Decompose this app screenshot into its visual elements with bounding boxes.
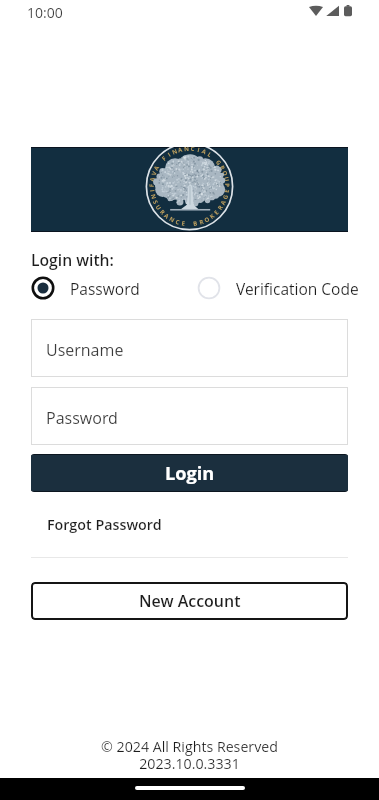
staticText: New Account (139, 590, 241, 612)
staticText: Password (46, 407, 118, 429)
button[interactable]: New Account (31, 582, 348, 620)
staticText: 10:00 (27, 3, 63, 22)
staticText: Verification Code (236, 278, 359, 299)
button[interactable]: Password (31, 387, 348, 445)
staticText: Forgot Password (47, 515, 162, 534)
staticText: 2023.10.0.3331 (139, 754, 240, 773)
staticText: Password (70, 278, 140, 299)
staticText: Login with: (31, 249, 114, 270)
button[interactable]: Verification Code (197, 272, 359, 304)
staticText: © 2024 All Rights Reserved (101, 737, 278, 756)
button[interactable]: Login (31, 455, 348, 491)
button[interactable]: Username (31, 319, 348, 377)
button[interactable]: Forgot Password (31, 507, 178, 542)
staticText: Username (46, 339, 124, 361)
button[interactable]: Password (31, 272, 140, 304)
staticText: Login (165, 461, 215, 486)
